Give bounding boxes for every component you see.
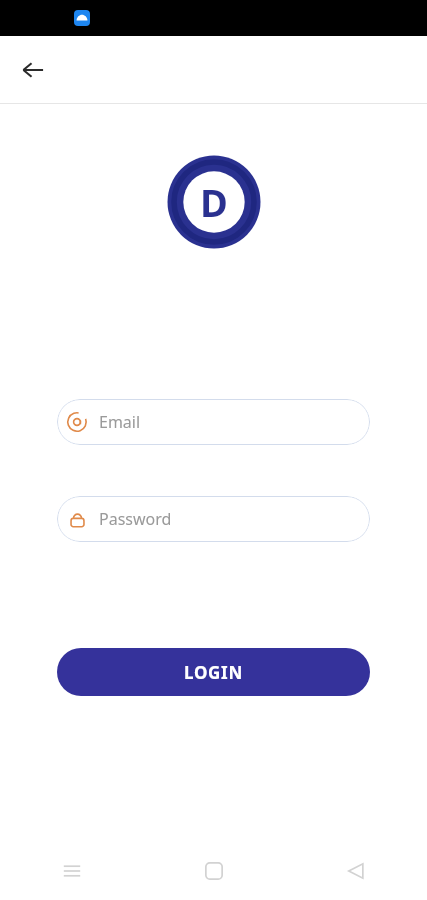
staticText: D	[200, 176, 228, 228]
button[interactable]: Back	[285, 842, 427, 900]
button[interactable]: Email	[57, 399, 370, 445]
button[interactable]: Password	[57, 496, 370, 542]
button[interactable]: Home	[143, 842, 285, 900]
staticText: Password	[99, 508, 172, 530]
button[interactable]: Recents	[0, 842, 143, 900]
staticText: LOGIN	[184, 661, 243, 684]
button[interactable]: LOGIN	[57, 648, 370, 696]
button[interactable]: Back	[13, 50, 53, 90]
staticText: Email	[99, 411, 141, 433]
